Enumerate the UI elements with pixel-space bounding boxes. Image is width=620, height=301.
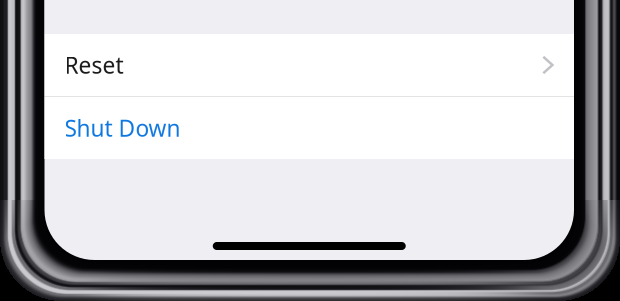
button[interactable]: Reset <box>44 34 574 96</box>
staticText: Reset <box>64 50 123 80</box>
button[interactable]: Shut Down <box>44 97 574 159</box>
staticText: Shut Down <box>64 113 180 143</box>
